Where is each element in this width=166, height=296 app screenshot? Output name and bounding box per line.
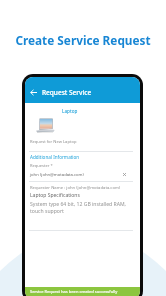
staticText: System type 64 bit, 12 GB installed RAM,…	[30, 201, 126, 215]
button[interactable]: Clear	[120, 170, 128, 178]
staticText: Create Service Request	[0, 32, 166, 48]
staticText: Request for New Laptop	[30, 139, 77, 145]
staticText: Request Service	[42, 88, 92, 97]
button[interactable]: Service Request has been created success…	[25, 287, 140, 296]
button[interactable]: Back	[30, 89, 37, 96]
staticText: Laptop	[62, 108, 78, 114]
staticText: john (john@motadata.com)	[30, 172, 84, 178]
staticText: Service Request has been created success…	[30, 289, 118, 295]
staticText: Laptop Specifications	[30, 192, 80, 199]
staticText: Requester Name : john (john@motadata.com…	[30, 185, 121, 191]
button[interactable]: Back	[25, 77, 140, 103]
staticText: Additional Information	[30, 154, 80, 160]
staticText: Requester *	[30, 163, 53, 169]
